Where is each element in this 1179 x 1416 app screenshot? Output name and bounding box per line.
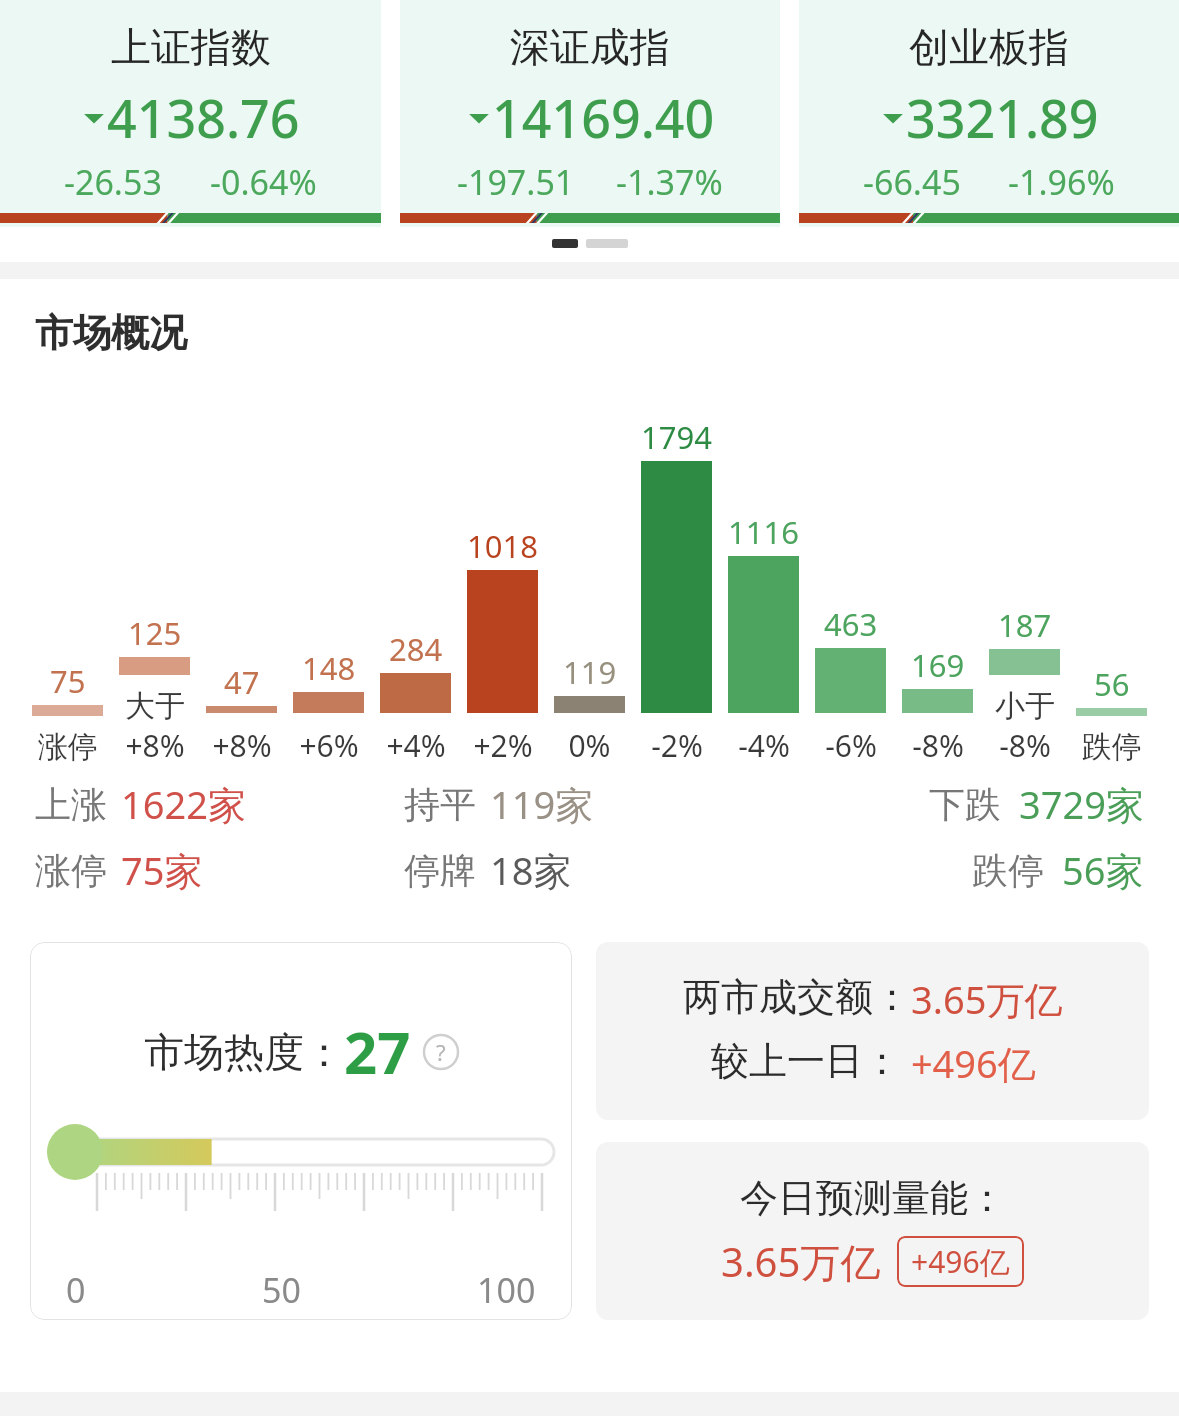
staticText: 下跌 [929, 782, 1001, 827]
button[interactable]: 两市成交额： [596, 942, 1149, 1120]
button[interactable]: 56 [1068, 416, 1155, 766]
staticText: 50 [262, 1267, 301, 1313]
staticText: -0.64% [210, 159, 317, 205]
staticText: 56 [1094, 663, 1130, 705]
staticText: -26.53 [64, 159, 162, 205]
staticText: 75 [50, 660, 86, 702]
button[interactable]: 创业板指 [799, 0, 1179, 227]
staticText: 148 [302, 647, 356, 689]
staticText: 56家 [1062, 844, 1144, 896]
staticText: 跌停 [972, 848, 1044, 893]
staticText: 大于 [125, 687, 185, 725]
button[interactable]: 今日预测量能： [596, 1142, 1149, 1320]
button[interactable]: 1018 [459, 413, 546, 766]
staticText: 27 [344, 1012, 411, 1091]
staticText: -8% [912, 725, 964, 766]
staticText: 今日预测量能： [740, 1174, 1006, 1222]
staticText: 0 [66, 1267, 86, 1313]
staticText: -1.96% [1008, 159, 1115, 205]
button[interactable]: 463 [807, 413, 894, 766]
staticText: -66.45 [863, 159, 961, 205]
staticText: -6% [825, 725, 877, 766]
staticText: 3.65万亿 [911, 973, 1063, 1025]
button[interactable]: 深证成指 [400, 0, 780, 227]
staticText: 187 [998, 604, 1052, 646]
staticText: 14169.40 [492, 82, 715, 153]
staticText: 1018 [467, 525, 538, 567]
staticText: 较上一日： [711, 1037, 901, 1085]
button[interactable]: +496亿 [911, 1241, 1010, 1282]
staticText: 75家 [121, 844, 203, 896]
button[interactable]: 284 [372, 413, 459, 766]
staticText: +8% [212, 725, 272, 766]
button[interactable] [552, 239, 578, 248]
staticText: 3321.89 [906, 82, 1099, 153]
staticText: 市场概况 [35, 309, 187, 357]
staticText: 上涨 [35, 782, 107, 827]
button[interactable]: 125 [111, 375, 198, 766]
staticText: 0% [568, 725, 611, 766]
staticText: +496亿 [901, 1037, 1036, 1089]
staticText: 持平 [404, 782, 476, 827]
button[interactable]: 1794 [633, 413, 720, 766]
staticText: +2% [473, 725, 533, 766]
staticText: 100 [477, 1267, 536, 1313]
button[interactable]: 上证指数 [0, 0, 381, 227]
staticText: +6% [299, 725, 359, 766]
staticText: 1116 [728, 511, 799, 553]
staticText: 3729家 [1019, 778, 1144, 830]
staticText: 125 [128, 612, 182, 654]
button[interactable]: 75 [24, 416, 111, 766]
button[interactable]: 187 [981, 375, 1068, 766]
staticText: 18家 [490, 844, 572, 896]
staticText: 119 [563, 651, 617, 693]
staticText: 涨停 [38, 728, 98, 766]
staticText: 47 [224, 661, 260, 703]
staticText: 涨停 [35, 848, 107, 893]
button[interactable]: 119 [546, 413, 633, 766]
staticText: 深证成指 [510, 22, 670, 72]
button[interactable]: 1116 [720, 413, 807, 766]
staticText: 小于 [995, 687, 1055, 725]
staticText: 1794 [641, 416, 712, 458]
staticText: 169 [911, 644, 965, 686]
staticText: 两市成交额： [683, 973, 911, 1021]
staticText: +4% [386, 725, 446, 766]
staticText: +496亿 [911, 1241, 1010, 1282]
button[interactable] [586, 239, 628, 248]
staticText: +8% [125, 725, 185, 766]
staticText: 284 [389, 628, 443, 670]
staticText: 463 [824, 603, 878, 645]
staticText: 停牌 [404, 848, 476, 893]
staticText: 市场热度： [144, 1027, 344, 1077]
staticText: 3.65万亿 [721, 1234, 881, 1289]
staticText: 创业板指 [909, 22, 1069, 72]
button[interactable]: 市场热度： [30, 942, 572, 1320]
staticText: 119家 [490, 778, 594, 830]
staticText: 4138.76 [107, 82, 300, 153]
staticText: 上证指数 [111, 22, 271, 72]
staticText: -8% [999, 725, 1051, 766]
button[interactable]: 148 [285, 413, 372, 766]
staticText: -4% [738, 725, 790, 766]
button[interactable]: 47 [198, 413, 285, 766]
staticText: -2% [651, 725, 703, 766]
staticText: -197.51 [457, 159, 575, 205]
staticText: 1622家 [121, 778, 246, 830]
staticText: -1.37% [616, 159, 723, 205]
staticText: 跌停 [1082, 728, 1142, 766]
staticText: ? [436, 1037, 446, 1067]
button[interactable]: 169 [894, 413, 981, 766]
button[interactable]: 帮助说明 [423, 1034, 459, 1070]
